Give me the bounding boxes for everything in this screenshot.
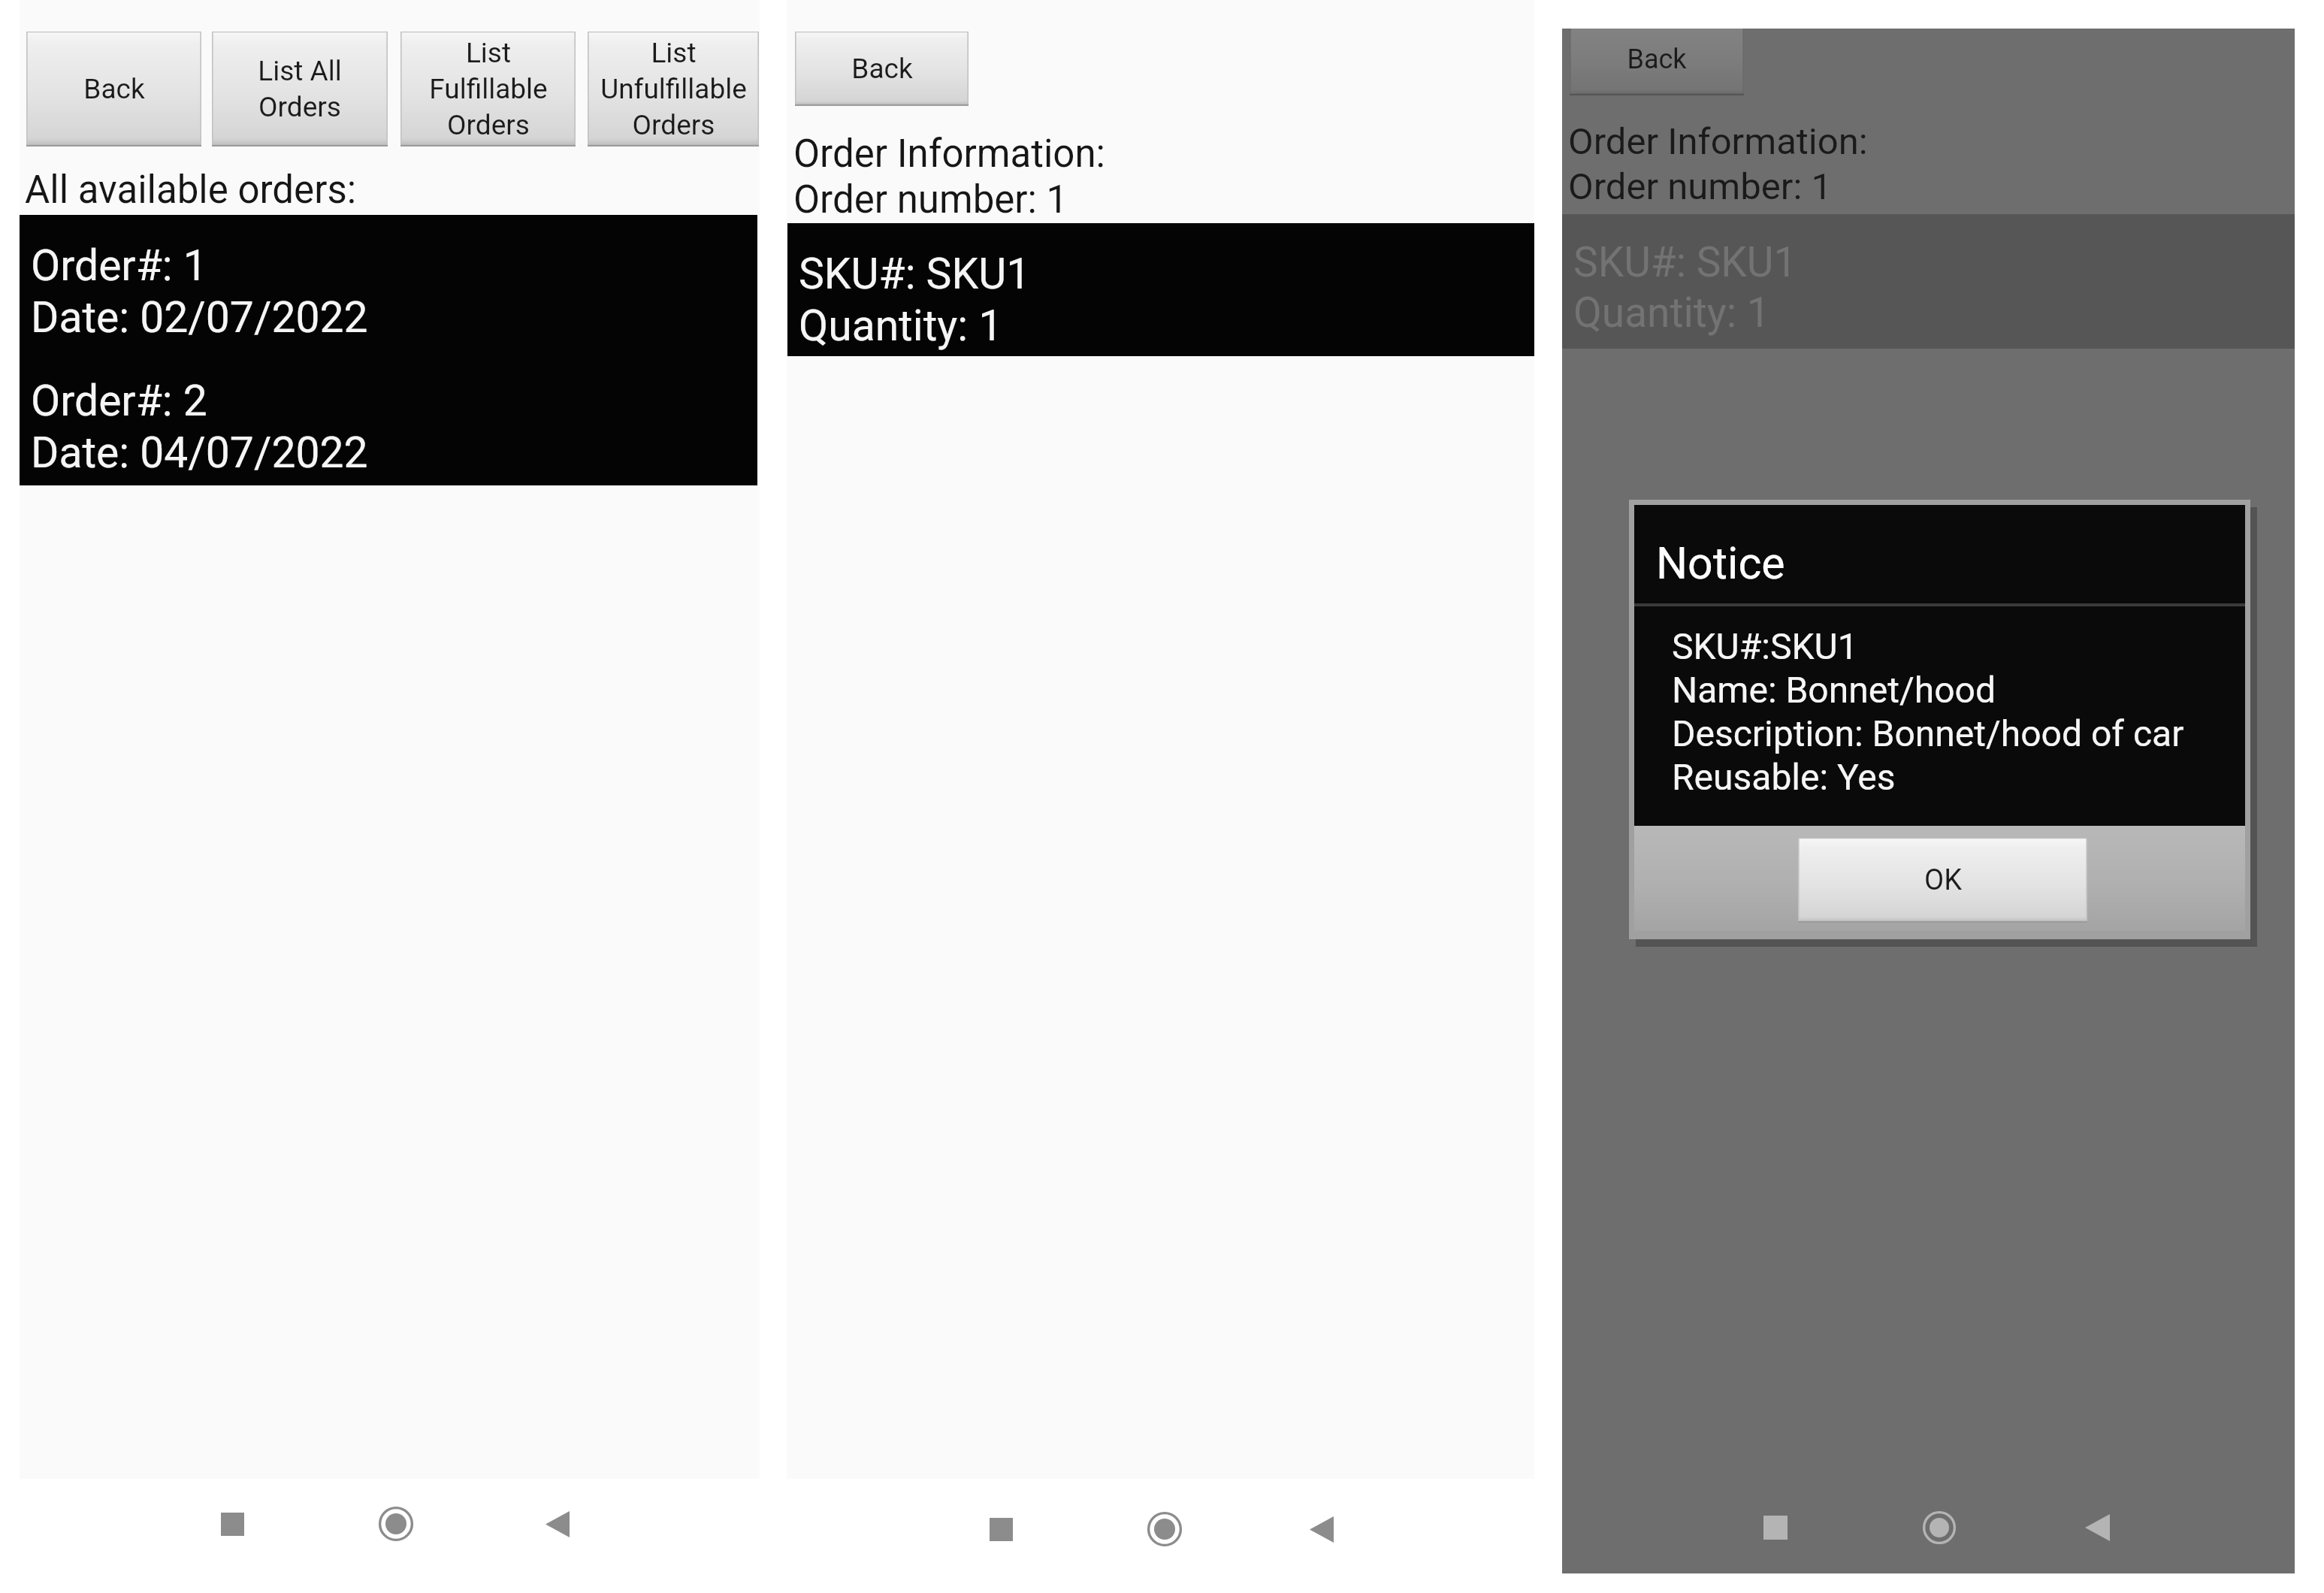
- button[interactable]: Back: [1296, 1504, 1347, 1555]
- button[interactable]: Back: [2072, 1502, 2123, 1553]
- button[interactable]: Back: [795, 32, 969, 106]
- button[interactable]: List Unfulfillable Orders: [588, 32, 759, 147]
- button[interactable]: OK: [1798, 838, 2087, 923]
- button[interactable]: Home: [1139, 1504, 1190, 1555]
- button[interactable]: Order#: 2 Date: 04/07/2022: [31, 376, 368, 478]
- button[interactable]: Back: [1570, 29, 1744, 95]
- staticText: List Fulfillable Orders: [429, 37, 548, 141]
- staticText: All available orders:: [25, 168, 357, 213]
- button[interactable]: Recent apps: [1750, 1502, 1801, 1553]
- button[interactable]: SKU#: SKU1 Quantity: 1: [799, 249, 1031, 351]
- button[interactable]: Home: [370, 1498, 422, 1549]
- staticText: OK: [1924, 863, 1962, 897]
- staticText: Back: [1627, 44, 1687, 75]
- button[interactable]: Home: [1914, 1502, 1965, 1553]
- button[interactable]: Order#: 1 Date: 02/07/2022: [31, 240, 368, 343]
- button[interactable]: Back: [26, 32, 201, 147]
- staticText: Order Information: Order number: 1: [1568, 120, 1868, 208]
- staticText: SKU#:SKU1 Name: Bonnet/hood Description:…: [1672, 625, 2184, 799]
- button[interactable]: Recent apps: [975, 1504, 1026, 1555]
- staticText: Order Information: Order number: 1: [793, 131, 1105, 222]
- staticText: Notice: [1656, 537, 1785, 589]
- staticText: SKU#: SKU1 Quantity: 1: [1573, 238, 1797, 337]
- staticText: Back: [851, 53, 913, 85]
- button[interactable]: List All Orders: [212, 32, 388, 147]
- button[interactable]: List Fulfillable Orders: [400, 32, 576, 147]
- button[interactable]: Recent apps: [207, 1498, 258, 1549]
- staticText: List All Orders: [258, 55, 342, 123]
- staticText: Back: [83, 73, 145, 105]
- button[interactable]: Back: [532, 1498, 583, 1549]
- staticText: List Unfulfillable Orders: [600, 37, 747, 141]
